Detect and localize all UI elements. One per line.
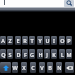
staticText: V [40,64,44,71]
staticText: T [30,37,34,44]
button[interactable]: F [22,49,28,59]
staticText: K [52,51,56,58]
button[interactable]: S [7,49,13,59]
button[interactable]: Q [0,49,6,59]
staticText: M [66,51,72,58]
button[interactable]: Z [7,36,13,45]
button[interactable]: Shift [0,62,11,73]
button[interactable]: N [56,62,62,73]
button[interactable]: R [22,36,28,45]
button[interactable]: I [51,36,57,45]
button[interactable]: L [59,49,65,59]
button[interactable]: X [21,62,27,73]
button[interactable]: G [29,49,35,59]
button[interactable]: E [15,36,21,45]
button[interactable]: P [66,36,72,45]
staticText: L [61,51,64,58]
staticText: R [23,37,27,44]
staticText: N [57,64,62,71]
staticText: Q [1,51,6,58]
button[interactable]: Backspace [65,62,74,73]
staticText: F [24,51,27,58]
button[interactable]: C [30,62,36,73]
button[interactable]: H [37,49,43,59]
button[interactable]: T [29,36,35,45]
button[interactable]: J [44,49,50,59]
staticText: H [38,51,43,58]
button[interactable]: W [12,62,18,73]
staticText: A [1,37,5,44]
staticText: J [46,51,48,58]
button[interactable]: A [0,36,6,45]
staticText: E [16,37,20,44]
staticText: Z [8,37,12,44]
staticText: O [60,37,65,44]
staticText: Y [38,37,42,44]
staticText: S [8,51,12,58]
staticText: P [67,37,71,44]
staticText: X [22,64,26,71]
staticText: D [16,51,21,58]
staticText: B [48,64,52,71]
staticText: W [12,64,18,71]
button[interactable]: V [39,62,45,73]
button[interactable]: B [47,62,53,73]
staticText: G [30,51,34,58]
staticText: I [53,37,55,44]
button[interactable]: O [59,36,65,45]
button[interactable]: Y [37,36,43,45]
button[interactable]: Search [64,0,74,7]
staticText: C [31,64,35,71]
staticText: U [45,37,50,44]
button[interactable]: K [51,49,57,59]
button[interactable]: M [66,49,72,59]
button[interactable]: U [44,36,50,45]
button[interactable]: D [15,49,21,59]
